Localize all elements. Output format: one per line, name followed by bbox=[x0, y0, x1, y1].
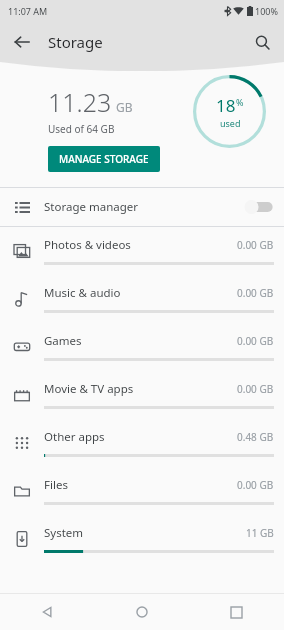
button[interactable]: MANAGE STORAGE bbox=[48, 146, 160, 172]
staticText: Storage manager bbox=[44, 199, 242, 215]
staticText: MANAGE STORAGE bbox=[59, 152, 149, 166]
staticText: 18 bbox=[216, 94, 236, 117]
staticText: 0.00 GB bbox=[237, 382, 274, 396]
staticText: 100% bbox=[255, 5, 278, 17]
staticText: Music & audio bbox=[44, 285, 237, 301]
button[interactable]: Files bbox=[0, 467, 284, 515]
staticText: Used of 64 GB bbox=[48, 122, 115, 136]
staticText: GB bbox=[116, 99, 133, 115]
button[interactable]: Games bbox=[0, 323, 284, 371]
button[interactable]: Back bbox=[6, 26, 38, 58]
staticText: 0.00 GB bbox=[237, 478, 274, 492]
button[interactable]: Back bbox=[0, 594, 94, 630]
staticText: % bbox=[236, 96, 244, 108]
staticText: 11 GB bbox=[246, 526, 274, 540]
staticText: 0.00 GB bbox=[237, 238, 274, 252]
staticText: 0.48 GB bbox=[237, 430, 274, 444]
staticText: System bbox=[44, 525, 246, 541]
staticText: Other apps bbox=[44, 429, 237, 445]
staticText: 11.23 bbox=[48, 85, 112, 119]
button[interactable]: Photos & videos bbox=[0, 227, 284, 275]
staticText: Files bbox=[44, 477, 237, 493]
staticText: 11:07 AM bbox=[8, 5, 48, 17]
staticText: Photos & videos bbox=[44, 237, 237, 253]
staticText: Games bbox=[44, 333, 237, 349]
staticText: 0.00 GB bbox=[237, 286, 274, 300]
staticText: Movie & TV apps bbox=[44, 381, 237, 397]
staticText: Storage bbox=[48, 32, 103, 52]
staticText: used bbox=[220, 117, 241, 129]
button[interactable]: Recent apps bbox=[189, 594, 284, 630]
button[interactable]: Search bbox=[246, 26, 278, 58]
button[interactable]: Storage manager bbox=[0, 188, 284, 226]
button[interactable]: Other apps bbox=[0, 419, 284, 467]
button[interactable]: Home bbox=[94, 594, 189, 630]
button[interactable]: System bbox=[0, 515, 284, 563]
button[interactable]: Movie & TV apps bbox=[0, 371, 284, 419]
staticText: 0.00 GB bbox=[237, 334, 274, 348]
button[interactable]: Music & audio bbox=[0, 275, 284, 323]
